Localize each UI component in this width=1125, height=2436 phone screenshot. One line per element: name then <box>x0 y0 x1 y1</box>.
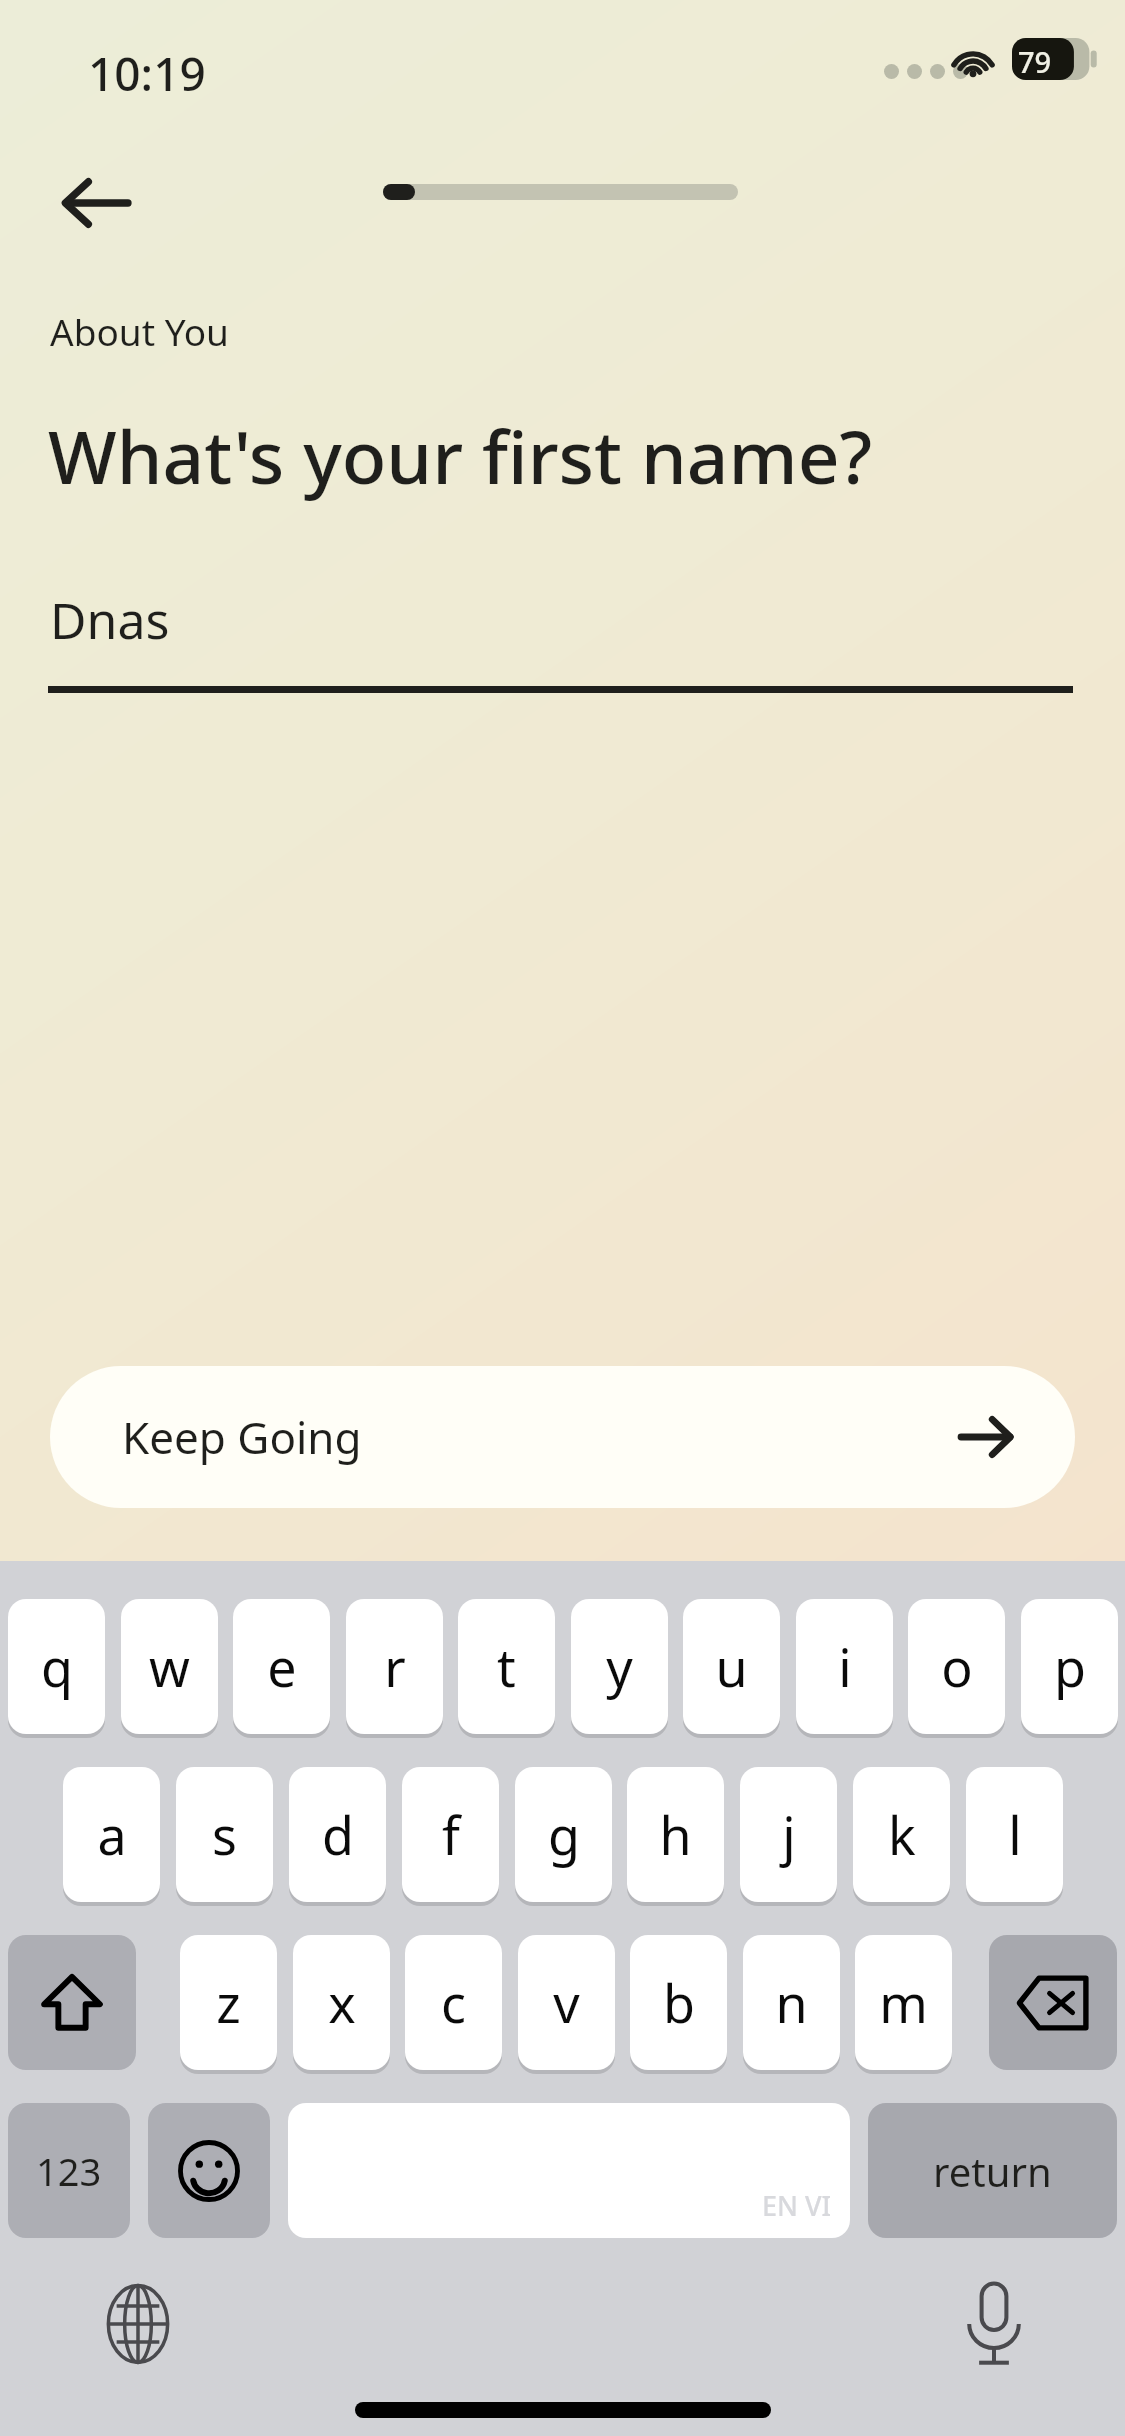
button[interactable]: Shift <box>8 1935 136 2070</box>
button[interactable]: 123 <box>8 2103 130 2238</box>
staticText: w <box>149 1631 190 1702</box>
button[interactable]: Back <box>50 158 140 248</box>
button[interactable]: z <box>180 1935 277 2070</box>
button[interactable]: Change keyboard language <box>92 2278 184 2370</box>
staticText: b <box>663 1967 695 2038</box>
staticText: x <box>328 1967 356 2038</box>
staticText: v <box>553 1967 580 2038</box>
button[interactable]: y <box>571 1599 668 1734</box>
button[interactable]: o <box>908 1599 1005 1734</box>
button[interactable]: p <box>1021 1599 1118 1734</box>
staticText: 10:19 <box>88 42 206 105</box>
button[interactable]: Dictation <box>948 2278 1040 2370</box>
button[interactable]: c <box>405 1935 502 2070</box>
staticText: r <box>384 1631 406 1702</box>
button[interactable]: h <box>627 1767 724 1902</box>
staticText: EN VI <box>762 2187 832 2224</box>
staticText: z <box>216 1967 241 2038</box>
staticText: h <box>659 1799 692 1870</box>
staticText: f <box>442 1799 460 1870</box>
staticText: t <box>497 1631 516 1702</box>
button[interactable]: a <box>63 1767 160 1902</box>
button[interactable]: e <box>233 1599 330 1734</box>
staticText: c <box>441 1967 466 2038</box>
button[interactable]: x <box>293 1935 390 2070</box>
staticText: o <box>941 1631 973 1702</box>
button[interactable]: q <box>8 1599 105 1734</box>
staticText: y <box>606 1631 633 1702</box>
button[interactable]: k <box>853 1767 950 1902</box>
button[interactable]: g <box>515 1767 612 1902</box>
staticText: g <box>548 1799 580 1870</box>
staticText: m <box>879 1967 928 2038</box>
staticText: j <box>782 1799 796 1870</box>
button[interactable]: Emoji <box>148 2103 270 2238</box>
button[interactable]: v <box>518 1935 615 2070</box>
staticText: What's your first name? <box>48 406 873 505</box>
staticText: i <box>838 1631 852 1702</box>
button[interactable]: j <box>740 1767 837 1902</box>
button[interactable]: m <box>855 1935 952 2070</box>
staticText: e <box>267 1631 297 1702</box>
button[interactable]: i <box>796 1599 893 1734</box>
staticText: p <box>1054 1631 1086 1702</box>
button[interactable]: l <box>966 1767 1063 1902</box>
staticText: n <box>775 1967 808 2038</box>
button[interactable]: d <box>289 1767 386 1902</box>
staticText: u <box>715 1631 748 1702</box>
button[interactable]: n <box>743 1935 840 2070</box>
staticText: Keep Going <box>122 1407 362 1467</box>
staticText: return <box>933 2144 1052 2198</box>
staticText: Dnas <box>50 586 170 654</box>
button[interactable]: return <box>868 2103 1117 2238</box>
staticText: q <box>41 1631 73 1702</box>
staticText: 79 <box>1018 42 1052 81</box>
button[interactable]: s <box>176 1767 273 1902</box>
button[interactable]: Keep Going <box>50 1366 1075 1508</box>
staticText: s <box>212 1799 237 1870</box>
button[interactable]: f <box>402 1767 499 1902</box>
staticText: d <box>322 1799 354 1870</box>
staticText: l <box>1008 1799 1022 1870</box>
staticText: a <box>97 1799 127 1870</box>
button[interactable]: Backspace <box>989 1935 1117 2070</box>
button[interactable]: w <box>121 1599 218 1734</box>
button[interactable]: Space <box>288 2103 850 2238</box>
staticText: 123 <box>36 2145 102 2197</box>
button[interactable]: b <box>630 1935 727 2070</box>
button[interactable]: r <box>346 1599 443 1734</box>
button[interactable]: u <box>683 1599 780 1734</box>
staticText: k <box>888 1799 916 1870</box>
staticText: About You <box>50 306 229 356</box>
button[interactable]: t <box>458 1599 555 1734</box>
